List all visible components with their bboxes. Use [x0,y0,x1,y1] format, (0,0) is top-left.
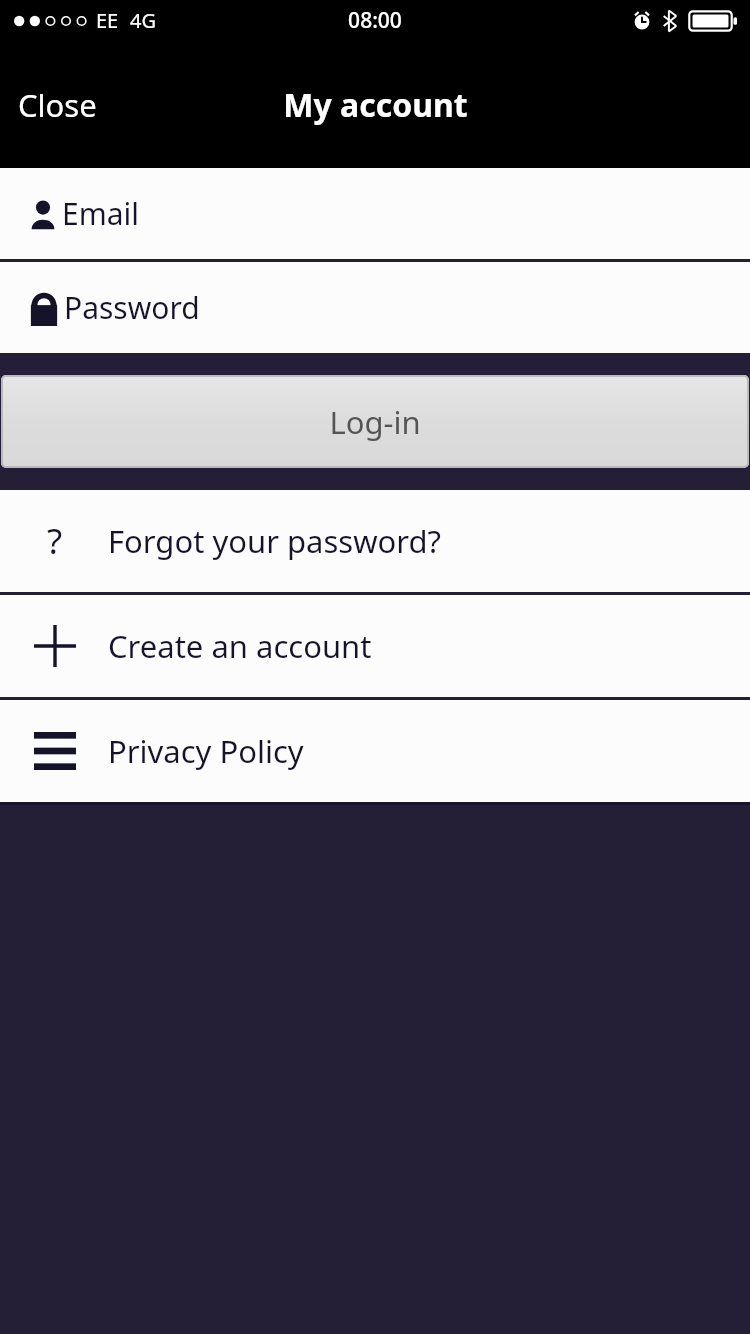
staticText: 08:00 [348,6,402,35]
button[interactable]: Password [0,262,750,353]
button[interactable]: Log-in [1,375,749,468]
button[interactable]: Email [0,168,750,259]
staticText: Privacy Policy [108,730,304,772]
staticText: Create an account [108,625,372,667]
other: Email [28,198,58,230]
button[interactable]: Create an account [0,595,750,697]
staticText: ? [47,517,63,565]
staticText: EE [96,7,119,34]
other: Forgot your password? [47,517,63,565]
staticText: Forgot your password? [108,520,441,562]
button[interactable]: Close [0,70,115,140]
button[interactable]: Privacy Policy [0,700,750,802]
staticText: My account [283,83,468,127]
other: Create an account [34,625,76,667]
staticText: 4G [130,7,156,34]
staticText: Email [62,193,140,234]
other: Password [28,290,60,326]
staticText: Close [18,84,97,126]
staticText: Log-in [329,401,421,443]
other: Privacy Policy [34,732,76,770]
staticText: Password [64,287,200,328]
button[interactable]: Forgot your password? [0,490,750,592]
